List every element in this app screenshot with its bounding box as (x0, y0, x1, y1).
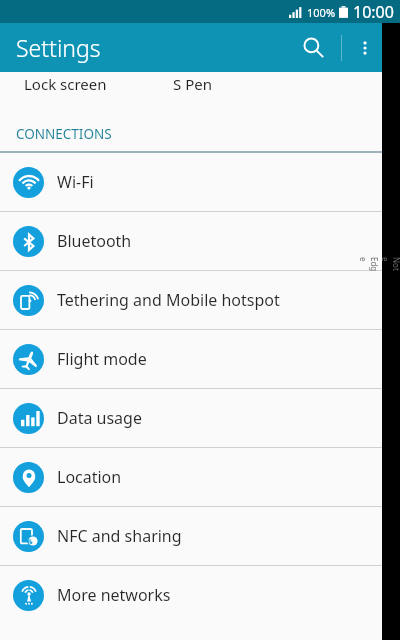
staticText: 100% (307, 5, 336, 20)
button[interactable]: Bluetooth (0, 212, 382, 270)
staticText: Galaxy Note Edge (358, 257, 400, 275)
staticText: Flight mode (57, 348, 147, 370)
button[interactable]: Data usage (0, 389, 382, 447)
button[interactable]: Search (291, 23, 335, 72)
staticText: Location (57, 466, 122, 488)
staticText: Data usage (57, 407, 142, 429)
button[interactable]: Wi-Fi (0, 153, 382, 211)
button[interactable]: Tethering and Mobile hotspot (0, 271, 382, 329)
staticText: Tethering and Mobile hotspot (57, 289, 280, 311)
button[interactable]: NFC and sharing (0, 507, 382, 565)
staticText: CONNECTIONS (16, 125, 112, 143)
staticText: 10:00 (353, 1, 394, 23)
staticText: Settings (16, 32, 101, 63)
staticText: More networks (57, 584, 171, 606)
button[interactable]: S Pen (173, 74, 212, 94)
button[interactable]: Location (0, 448, 382, 506)
button[interactable]: More networks (0, 566, 382, 624)
staticText: Wi-Fi (57, 171, 94, 193)
staticText: Bluetooth (57, 230, 132, 252)
button[interactable]: Lock screen (24, 74, 107, 94)
button[interactable]: More options (348, 23, 382, 72)
staticText: NFC and sharing (57, 525, 182, 547)
button[interactable]: Flight mode (0, 330, 382, 388)
